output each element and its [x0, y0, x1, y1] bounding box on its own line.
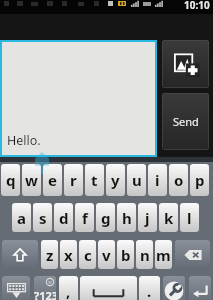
button[interactable]: u: [127, 164, 146, 196]
button[interactable]: Switch keyboard: [2, 276, 30, 300]
button[interactable]: a: [12, 203, 31, 232]
staticText: .: [147, 281, 152, 300]
staticText: d: [59, 208, 69, 228]
button[interactable]: g: [96, 203, 115, 232]
staticText: c: [84, 245, 92, 265]
staticText: w: [25, 170, 38, 190]
staticText: b: [121, 245, 131, 265]
button[interactable]: ,: [59, 276, 78, 300]
button[interactable]: b: [117, 240, 134, 269]
staticText: y: [111, 170, 120, 190]
button[interactable]: Shift: [2, 240, 38, 269]
button[interactable]: z: [41, 240, 58, 269]
button[interactable]: p: [190, 164, 209, 196]
staticText: a: [17, 208, 26, 228]
staticText: s: [39, 208, 47, 228]
button[interactable]: t: [85, 164, 104, 196]
staticText: v: [102, 245, 111, 265]
button[interactable]: f: [75, 203, 94, 232]
staticText: t: [91, 170, 98, 190]
staticText: n: [140, 245, 150, 265]
staticText: ,: [66, 281, 71, 300]
button[interactable]: e: [43, 164, 62, 196]
button[interactable]: Backspace: [175, 240, 210, 269]
button[interactable]: y: [106, 164, 125, 196]
button[interactable]: [80, 276, 137, 300]
button[interactable]: Attach image: [162, 40, 209, 88]
button[interactable]: n: [136, 240, 153, 269]
staticText: j: [145, 208, 150, 228]
button[interactable]: s: [33, 203, 52, 232]
button[interactable]: Symbols: [34, 276, 56, 300]
staticText: e: [48, 170, 57, 190]
staticText: q: [6, 170, 16, 190]
button[interactable]: h: [117, 203, 136, 232]
staticText: 10:10: [184, 0, 210, 12]
button[interactable]: Settings: [163, 276, 185, 300]
button[interactable]: o: [169, 164, 188, 196]
staticText: k: [164, 208, 174, 228]
button[interactable]: l: [180, 203, 199, 232]
button[interactable]: x: [60, 240, 77, 269]
button[interactable]: .: [139, 276, 160, 300]
staticText: f: [82, 208, 88, 228]
button[interactable]: q: [1, 164, 20, 196]
button[interactable]: Enter: [189, 276, 211, 300]
staticText: p: [195, 170, 205, 190]
staticText: l: [187, 208, 192, 228]
button[interactable]: j: [138, 203, 157, 232]
staticText: h: [122, 208, 132, 228]
staticText: ?123: [34, 288, 56, 300]
staticText: g: [101, 208, 111, 228]
button[interactable]: v: [98, 240, 115, 269]
staticText: r: [70, 170, 77, 190]
staticText: o: [174, 170, 184, 190]
button[interactable]: Send: [162, 93, 209, 150]
button[interactable]: i: [148, 164, 167, 196]
button[interactable]: d: [54, 203, 73, 232]
staticText: x: [64, 245, 73, 265]
button[interactable]: m: [155, 240, 172, 269]
staticText: z: [46, 245, 54, 265]
staticText: u: [132, 170, 142, 190]
button[interactable]: Hello.: [2, 42, 155, 155]
button[interactable]: c: [79, 240, 96, 269]
button[interactable]: w: [22, 164, 41, 196]
staticText: Hello.: [7, 132, 41, 149]
staticText: m: [156, 245, 171, 265]
button[interactable]: r: [64, 164, 83, 196]
button[interactable]: k: [159, 203, 178, 232]
staticText: Send: [173, 114, 199, 129]
staticText: i: [155, 170, 160, 190]
